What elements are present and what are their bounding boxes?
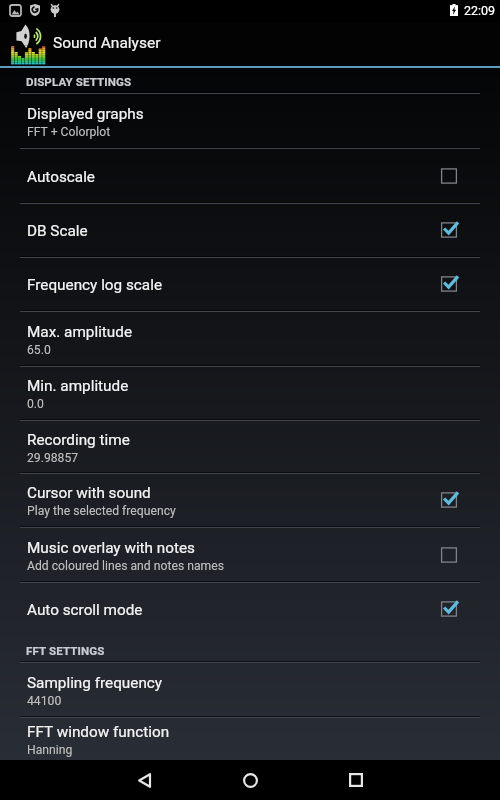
button[interactable]: Sampling frequency — [0, 663, 500, 716]
staticText: 29.98857 — [27, 451, 79, 465]
staticText: DISPLAY SETTINGS — [26, 75, 132, 89]
staticText: Sound Analyser — [53, 34, 161, 52]
button[interactable]: Min. amplitude — [0, 367, 500, 419]
staticText: FFT + Colorplot — [27, 125, 111, 139]
button[interactable]: Displayed graphs — [0, 94, 500, 147]
staticText: Auto scroll mode — [27, 601, 143, 619]
button[interactable]: Cursor with sound — [0, 474, 500, 526]
staticText: 44100 — [27, 694, 62, 708]
button[interactable]: Music overlay with notes — [0, 528, 500, 581]
button[interactable]: Back — [91, 760, 197, 800]
button[interactable]: Frequency log scale — [0, 258, 500, 310]
button[interactable]: FFT window function — [0, 718, 500, 760]
staticText: Add coloured lines and notes names — [27, 559, 224, 573]
staticText: Play the selected frequency — [27, 504, 176, 518]
staticText: Frequency log scale — [27, 276, 163, 294]
staticText: 65.0 — [27, 343, 51, 357]
staticText: DB Scale — [27, 222, 88, 240]
button[interactable]: Recording time — [0, 421, 500, 472]
button[interactable]: Auto scroll mode — [0, 583, 500, 635]
button[interactable]: Autoscale — [0, 149, 500, 202]
staticText: Displayed graphs — [27, 105, 144, 123]
staticText: Cursor with sound — [27, 484, 151, 502]
staticText: Hanning — [27, 743, 73, 757]
staticText: FFT window function — [27, 723, 170, 741]
staticText: FFT SETTINGS — [26, 644, 105, 658]
staticText: Min. amplitude — [27, 377, 129, 395]
staticText: Autoscale — [27, 168, 95, 186]
staticText: Sampling frequency — [27, 674, 163, 692]
button[interactable]: Home — [197, 760, 303, 800]
staticText: 22:09 — [464, 3, 496, 18]
button[interactable]: DB Scale — [0, 204, 500, 256]
button[interactable]: Recent apps — [303, 760, 409, 800]
staticText: Recording time — [27, 431, 130, 449]
staticText: Music overlay with notes — [27, 539, 196, 557]
button[interactable]: Max. amplitude — [0, 312, 500, 365]
staticText: Max. amplitude — [27, 323, 133, 341]
staticText: 0.0 — [27, 397, 44, 411]
